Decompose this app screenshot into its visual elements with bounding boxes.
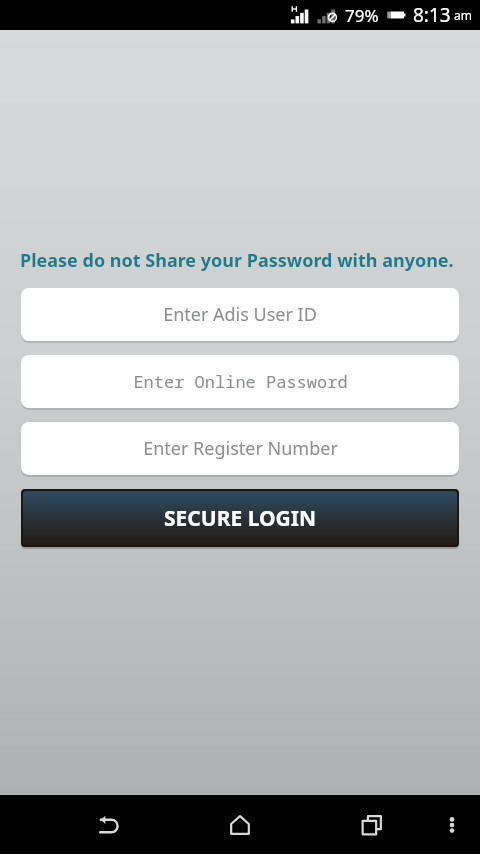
button[interactable]: Enter Online Password — [21, 355, 459, 408]
staticText: Enter Adis User ID — [163, 302, 317, 327]
button[interactable]: Back — [70, 795, 146, 854]
staticText: Enter Register Number — [143, 436, 338, 461]
button[interactable]: More options — [428, 795, 476, 854]
staticText: Please do not Share your Password with a… — [20, 248, 454, 273]
staticText: am — [454, 7, 472, 23]
button[interactable]: SECURE LOGIN — [23, 491, 457, 545]
button[interactable]: Enter Register Number — [21, 422, 459, 475]
button[interactable]: Recent apps — [334, 795, 410, 854]
button[interactable]: Enter Adis User ID — [21, 288, 459, 341]
staticText: 8:13 — [413, 2, 451, 28]
staticText: Enter Online Password — [133, 370, 348, 393]
button[interactable]: Home — [202, 795, 278, 854]
staticText: 79% — [345, 4, 379, 27]
staticText: SECURE LOGIN — [164, 504, 317, 533]
